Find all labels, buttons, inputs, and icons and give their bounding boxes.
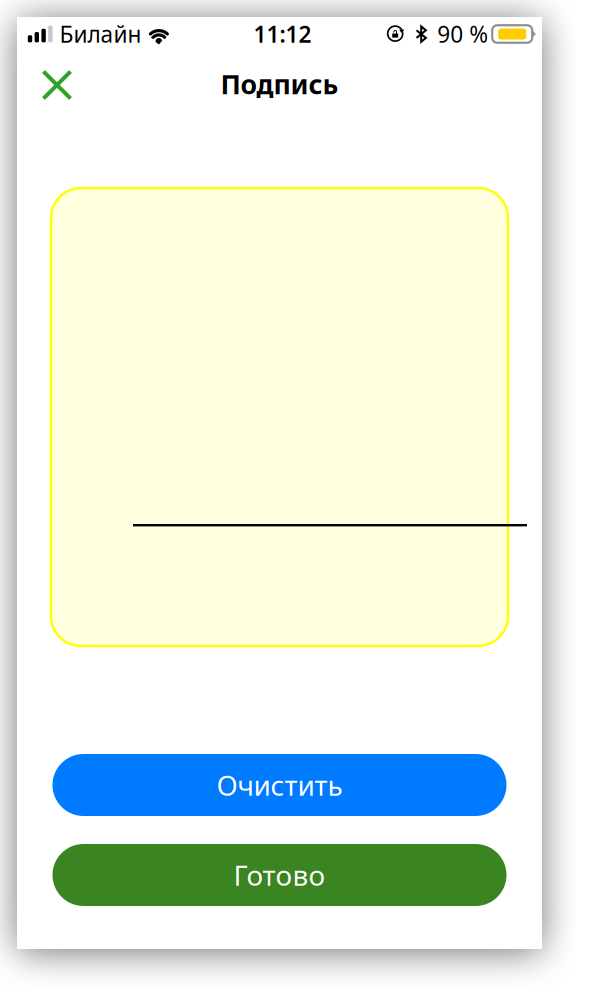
staticText: Очистить [216,766,342,804]
staticText: Готово [233,856,325,894]
staticText: Билайн [59,19,141,49]
staticText: 11:12 [253,19,311,49]
staticText: 90 % [437,19,488,49]
button[interactable]: Готово [52,844,506,906]
button[interactable]: Закрыть [35,63,79,107]
button[interactable]: Очистить [52,754,506,816]
staticText: Подпись [220,66,338,102]
